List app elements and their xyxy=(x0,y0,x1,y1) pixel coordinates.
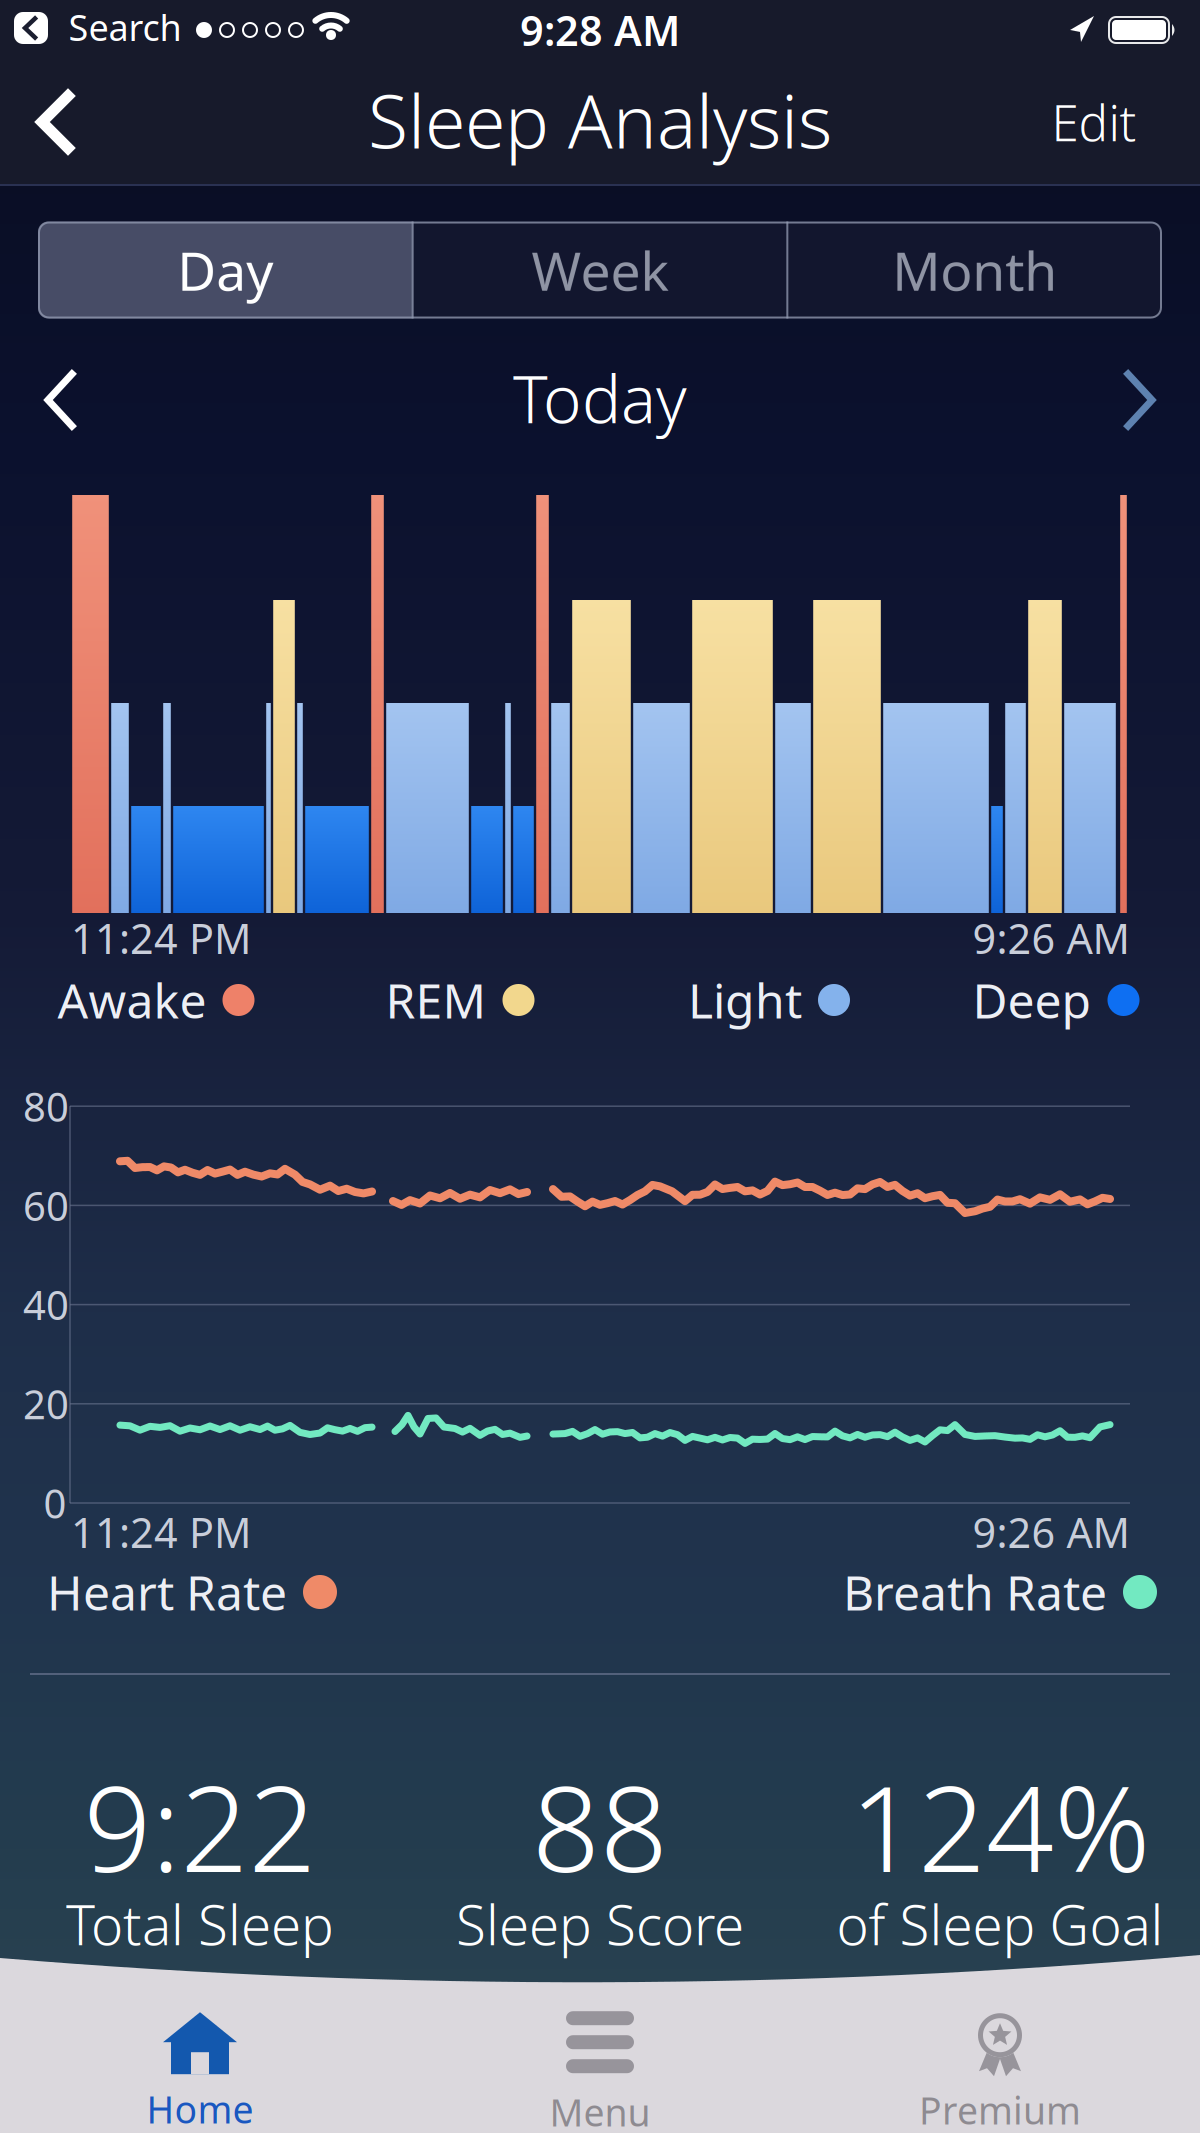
button[interactable]: Day xyxy=(38,221,413,318)
button[interactable]: Week xyxy=(413,221,787,318)
button[interactable]: Back xyxy=(28,92,82,152)
staticText: Awake xyxy=(57,968,206,1032)
staticText: Home xyxy=(146,2084,253,2133)
staticText: Search xyxy=(68,3,181,51)
staticText: 11:24 PM xyxy=(71,911,251,965)
staticText: Day xyxy=(177,235,273,305)
staticText: Week xyxy=(531,235,668,305)
staticText: Menu xyxy=(549,2087,650,2133)
staticText: 60 xyxy=(23,1179,69,1232)
staticText: Premium xyxy=(919,2085,1081,2133)
staticText: 9:28 AM xyxy=(520,3,680,57)
staticText: Today xyxy=(513,355,687,441)
staticText: 20 xyxy=(23,1377,69,1430)
staticText: 9:26 AM xyxy=(972,911,1129,965)
button[interactable]: Home xyxy=(146,2012,253,2133)
button[interactable]: Premium xyxy=(919,2013,1081,2133)
staticText: Heart Rate xyxy=(47,1560,287,1624)
staticText: Total Sleep xyxy=(66,1888,334,1960)
staticText: 80 xyxy=(23,1080,69,1133)
button[interactable]: Back to Search xyxy=(15,13,185,47)
staticText: Light xyxy=(688,968,802,1032)
button[interactable]: Month xyxy=(787,221,1162,318)
staticText: Edit xyxy=(1051,89,1136,155)
staticText: Deep xyxy=(972,968,1091,1032)
staticText: Sleep Score xyxy=(456,1888,744,1960)
button[interactable]: Next day xyxy=(1110,365,1170,435)
staticText: 9:22 xyxy=(83,1747,316,1905)
staticText: Breath Rate xyxy=(843,1560,1107,1624)
staticText: of Sleep Goal xyxy=(836,1888,1163,1960)
staticText: 88 xyxy=(532,1747,668,1905)
staticText: 0 xyxy=(43,1476,66,1529)
staticText: Month xyxy=(892,235,1057,305)
staticText: 124% xyxy=(850,1747,1150,1905)
button[interactable]: Menu xyxy=(549,2011,650,2133)
staticText: Sleep Analysis xyxy=(368,71,832,169)
staticText: 9:26 AM xyxy=(972,1505,1129,1559)
button[interactable]: Previous day xyxy=(30,365,90,435)
staticText: 40 xyxy=(23,1278,69,1331)
staticText: 11:24 PM xyxy=(71,1505,251,1559)
staticText: REM xyxy=(385,968,486,1032)
button[interactable]: Edit xyxy=(1051,89,1136,155)
